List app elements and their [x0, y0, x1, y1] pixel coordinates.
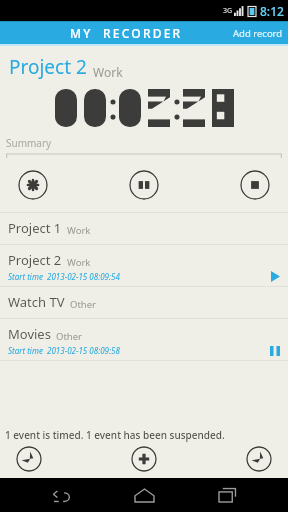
staticText: 1 event is timed. 1 event has been suspe… [5, 428, 225, 442]
button[interactable]: Cancel [18, 170, 48, 200]
staticText: Other [56, 330, 83, 343]
button[interactable]: Add [131, 446, 157, 472]
staticText: Work [67, 256, 91, 269]
staticText: 2013-02-15 08:09:58 [47, 345, 120, 356]
button[interactable]: Home [122, 478, 166, 512]
staticText: Summary [6, 136, 52, 150]
staticText: 8:12 [260, 3, 284, 19]
button[interactable]: Add record [228, 22, 288, 44]
button[interactable]: Pause [129, 170, 159, 200]
button[interactable]: Back [39, 478, 83, 512]
button[interactable]: Project 1 [0, 213, 288, 245]
staticText: Work [67, 224, 91, 237]
staticText: Project 2 [9, 54, 87, 80]
staticText: Add record [233, 27, 283, 40]
button[interactable]: Timer [16, 446, 42, 472]
button[interactable]: History [246, 446, 272, 472]
button[interactable]: Project 2 [0, 245, 288, 287]
staticText: 2013-02-15 08:09:54 [47, 271, 120, 282]
staticText: Watch TV [8, 293, 65, 311]
staticText: 3G [223, 6, 233, 16]
staticText: Movies [8, 325, 51, 343]
button[interactable]: Movies [0, 319, 288, 361]
button[interactable]: Watch TV [0, 287, 288, 319]
staticText: Project 1 [8, 219, 62, 237]
staticText: Project 2 [8, 251, 62, 269]
staticText: Work [93, 64, 123, 80]
staticText: Start time [8, 345, 43, 356]
staticText: Start time [8, 271, 43, 282]
button[interactable]: Recents [205, 478, 249, 512]
staticText: Other [70, 298, 97, 311]
staticText: MY RECORDER [70, 25, 183, 41]
button[interactable]: Stop [240, 170, 270, 200]
